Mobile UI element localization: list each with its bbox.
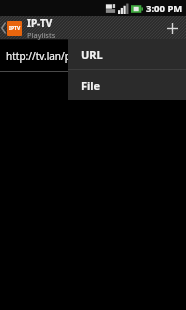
- button[interactable]: Navigate up: [0, 16, 115, 40]
- button[interactable]: URL: [68, 39, 186, 69]
- staticText: IP-TV: [27, 16, 53, 30]
- button[interactable]: File: [68, 70, 186, 100]
- staticText: URL: [81, 47, 103, 62]
- staticText: http://tv.lan/playlist.m3u: [6, 49, 122, 63]
- staticText: Playlists: [27, 30, 56, 40]
- staticText: 3:00 PM: [146, 2, 183, 15]
- button[interactable]: http://tv.lan/playlist.m3u: [0, 40, 186, 71]
- staticText: File: [81, 78, 101, 93]
- button[interactable]: Add playlist: [158, 16, 186, 40]
- staticText: IPTV: [9, 25, 21, 32]
